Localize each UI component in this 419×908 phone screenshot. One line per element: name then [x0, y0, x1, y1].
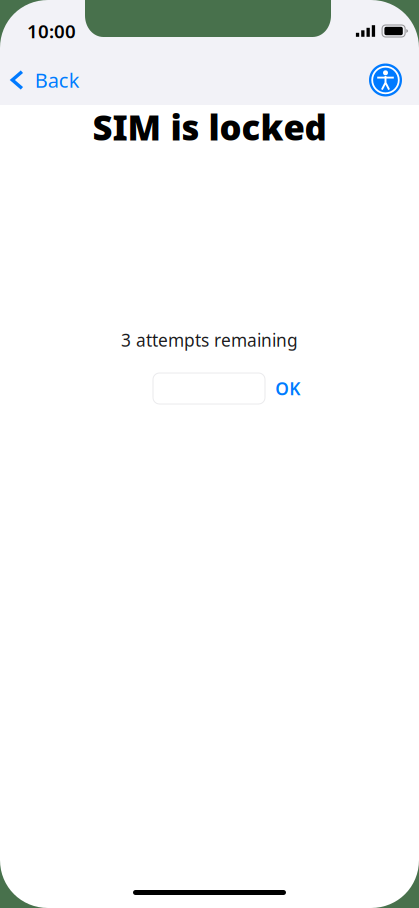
- button[interactable]: Accessibility: [360, 62, 411, 98]
- button[interactable]: Back: [0, 62, 92, 98]
- staticText: SIM is locked: [92, 104, 326, 150]
- staticText: OK: [275, 377, 300, 400]
- button[interactable]: OK: [275, 377, 300, 400]
- staticText: 10:00: [27, 19, 76, 43]
- staticText: Back: [35, 67, 80, 93]
- staticText: 3 attempts remaining: [121, 328, 298, 351]
- button[interactable]: SIM PIN: [153, 373, 265, 404]
